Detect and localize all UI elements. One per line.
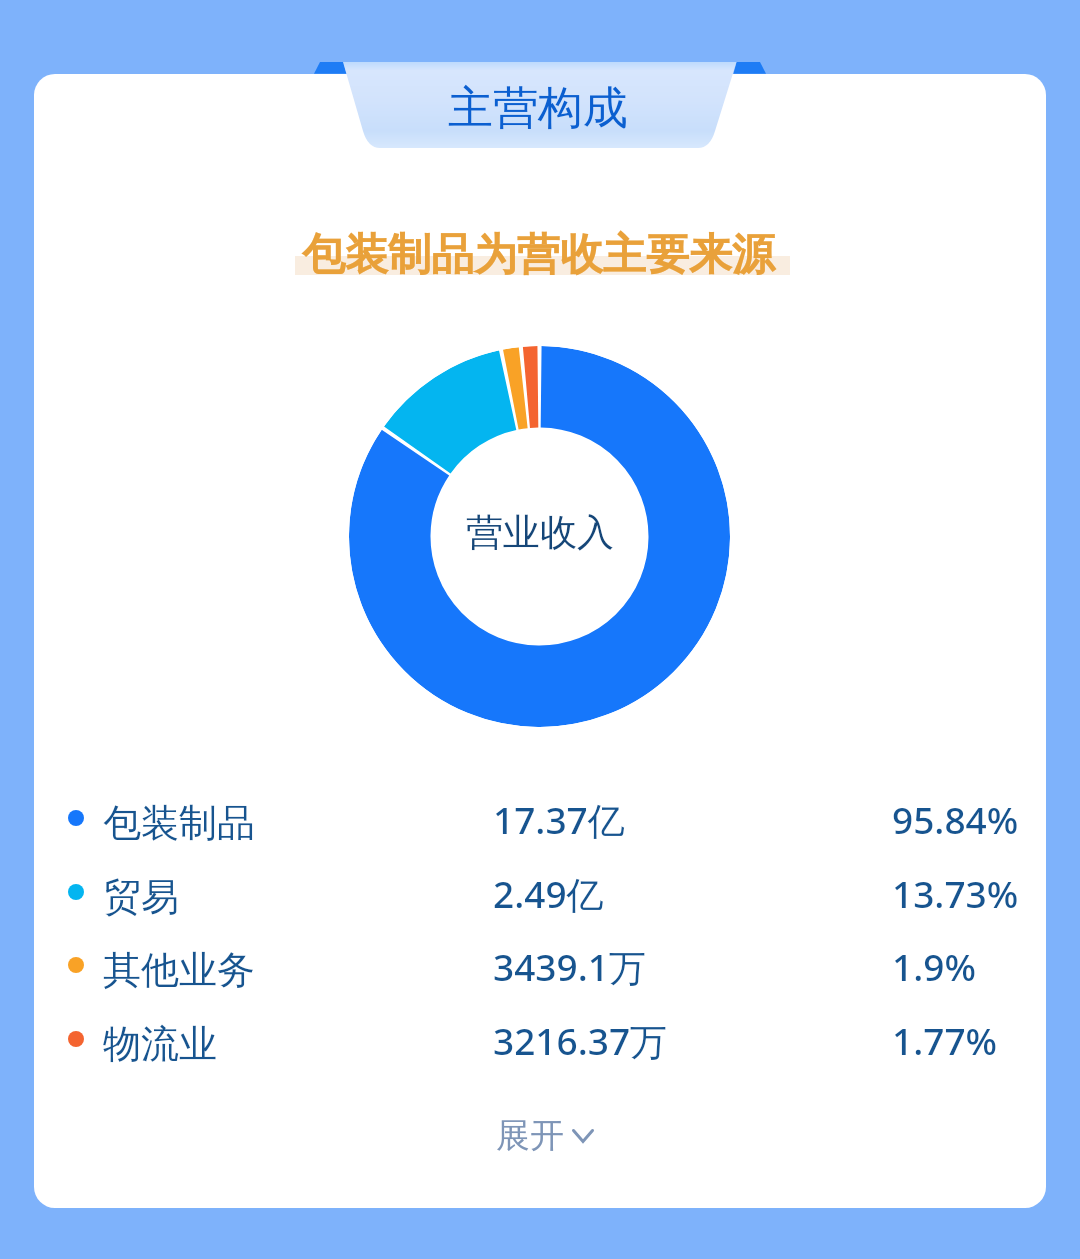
button[interactable]: 其他业务 <box>0 929 1080 1001</box>
staticText: 包装制品为营收主要来源 <box>302 228 775 282</box>
button[interactable]: 展开 <box>476 1099 616 1173</box>
staticText: 其他业务 <box>103 946 255 994</box>
button[interactable]: 物流业 <box>0 1003 1080 1075</box>
staticText: 95.84% <box>892 794 1019 844</box>
button[interactable]: 贸易 <box>0 856 1080 928</box>
staticText: 营业收入 <box>466 509 614 556</box>
staticText: 3216.37万 <box>493 1015 668 1066</box>
staticText: 3439.1万 <box>493 941 646 992</box>
staticText: 展开 <box>496 1114 564 1157</box>
staticText: 主营构成 <box>448 80 628 137</box>
staticText: 包装制品 <box>103 799 255 847</box>
button[interactable]: 主营构成 <box>310 55 770 155</box>
staticText: 17.37亿 <box>493 794 625 845</box>
staticText: 贸易 <box>103 873 179 921</box>
staticText: 13.73% <box>892 868 1019 918</box>
button[interactable]: 包装制品 <box>0 782 1080 854</box>
staticText: 1.77% <box>892 1015 998 1065</box>
staticText: 1.9% <box>892 941 976 991</box>
staticText: 2.49亿 <box>493 868 604 919</box>
button[interactable]: 营业收入构成环形图 <box>349 346 730 727</box>
staticText: 物流业 <box>103 1020 217 1068</box>
